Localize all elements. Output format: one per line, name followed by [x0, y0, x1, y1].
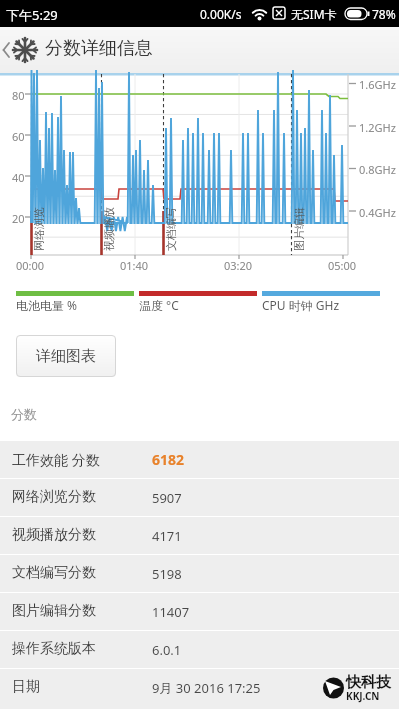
staticText: CPU 时钟 GHz: [262, 297, 340, 313]
staticText: 9月 30 2016 17:25: [152, 679, 261, 697]
staticText: 日期: [12, 678, 40, 696]
staticText: 80: [12, 88, 25, 103]
staticText: 0.8GHz: [359, 162, 396, 177]
staticText: 00:00: [16, 258, 45, 273]
staticText: 详细图表: [36, 347, 96, 366]
staticText: 6182: [152, 450, 185, 469]
button[interactable]: [0, 441, 399, 478]
staticText: 0.00K/s: [200, 6, 242, 22]
staticText: 05:00: [328, 258, 357, 273]
staticText: 6.0.1: [152, 641, 182, 659]
staticText: 78%: [372, 6, 396, 22]
staticText: 5907: [152, 489, 182, 507]
staticText: 4171: [152, 527, 182, 545]
staticText: 03:20: [224, 258, 253, 273]
button[interactable]: 详细图表: [16, 335, 116, 377]
staticText: 温度 °C: [139, 297, 179, 313]
staticText: 网络浏览: [32, 207, 46, 251]
staticText: 60: [12, 129, 25, 144]
button[interactable]: [0, 517, 399, 554]
staticText: 1.2GHz: [359, 120, 396, 135]
staticText: 图片编辑: [292, 207, 306, 251]
button[interactable]: [0, 555, 399, 592]
staticText: 40: [12, 170, 25, 185]
staticText: 视频播放分数: [12, 526, 96, 544]
staticText: 分数详细信息: [45, 37, 153, 60]
staticText: 无SIM卡: [291, 6, 337, 22]
staticText: 文档编写分数: [12, 564, 96, 582]
button[interactable]: [0, 27, 44, 74]
staticText: 快科技: [346, 673, 391, 692]
staticText: 下午5:29: [6, 6, 58, 24]
staticText: KKJ.CN: [346, 689, 380, 703]
staticText: 文档编写: [164, 207, 178, 251]
staticText: 视频播放: [102, 207, 116, 251]
staticText: 01:40: [120, 258, 149, 273]
button[interactable]: [0, 631, 399, 668]
staticText: 电池电量 %: [16, 297, 78, 313]
staticText: 分数: [11, 406, 37, 422]
button[interactable]: [0, 669, 399, 709]
staticText: 网络浏览分数: [12, 488, 96, 506]
staticText: 0.4GHz: [359, 205, 396, 220]
staticText: 5198: [152, 565, 182, 583]
staticText: 1.6GHz: [359, 77, 396, 92]
staticText: 20: [12, 211, 25, 226]
staticText: 图片编辑分数: [12, 602, 96, 620]
staticText: 工作效能 分数: [12, 450, 100, 469]
staticText: 11407: [152, 603, 190, 621]
button[interactable]: [0, 593, 399, 630]
button[interactable]: [0, 479, 399, 516]
staticText: 操作系统版本: [12, 640, 96, 658]
